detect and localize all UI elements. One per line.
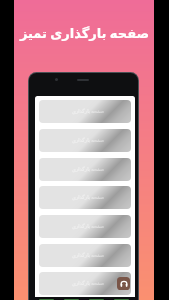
button[interactable] [38,297,54,300]
staticText: صفحه بارگذاری [72,280,105,287]
staticText: صفحه بارگذاری [72,223,105,230]
button[interactable]: صفحه بارگذاری [39,186,131,209]
button[interactable]: صفحه بارگذاری [39,158,131,181]
button[interactable] [88,297,104,300]
button[interactable]: Headphones [117,277,130,290]
staticText: صفحه بارگذاری [72,108,105,115]
staticText: صفحه بارگذاری تمیز [0,24,169,42]
button[interactable] [63,297,79,300]
button[interactable] [113,297,129,300]
button[interactable]: صفحه بارگذاری [39,272,131,295]
staticText: صفحه بارگذاری [72,166,105,173]
button[interactable]: صفحه بارگذاری [39,215,131,238]
staticText: صفحه بارگذاری [72,194,105,201]
button[interactable]: صفحه بارگذاری [39,129,131,152]
staticText: صفحه بارگذاری [72,137,105,144]
button[interactable]: صفحه بارگذاری [39,100,131,123]
staticText: صفحه بارگذاری [72,252,105,259]
button[interactable]: صفحه بارگذاری [39,244,131,267]
